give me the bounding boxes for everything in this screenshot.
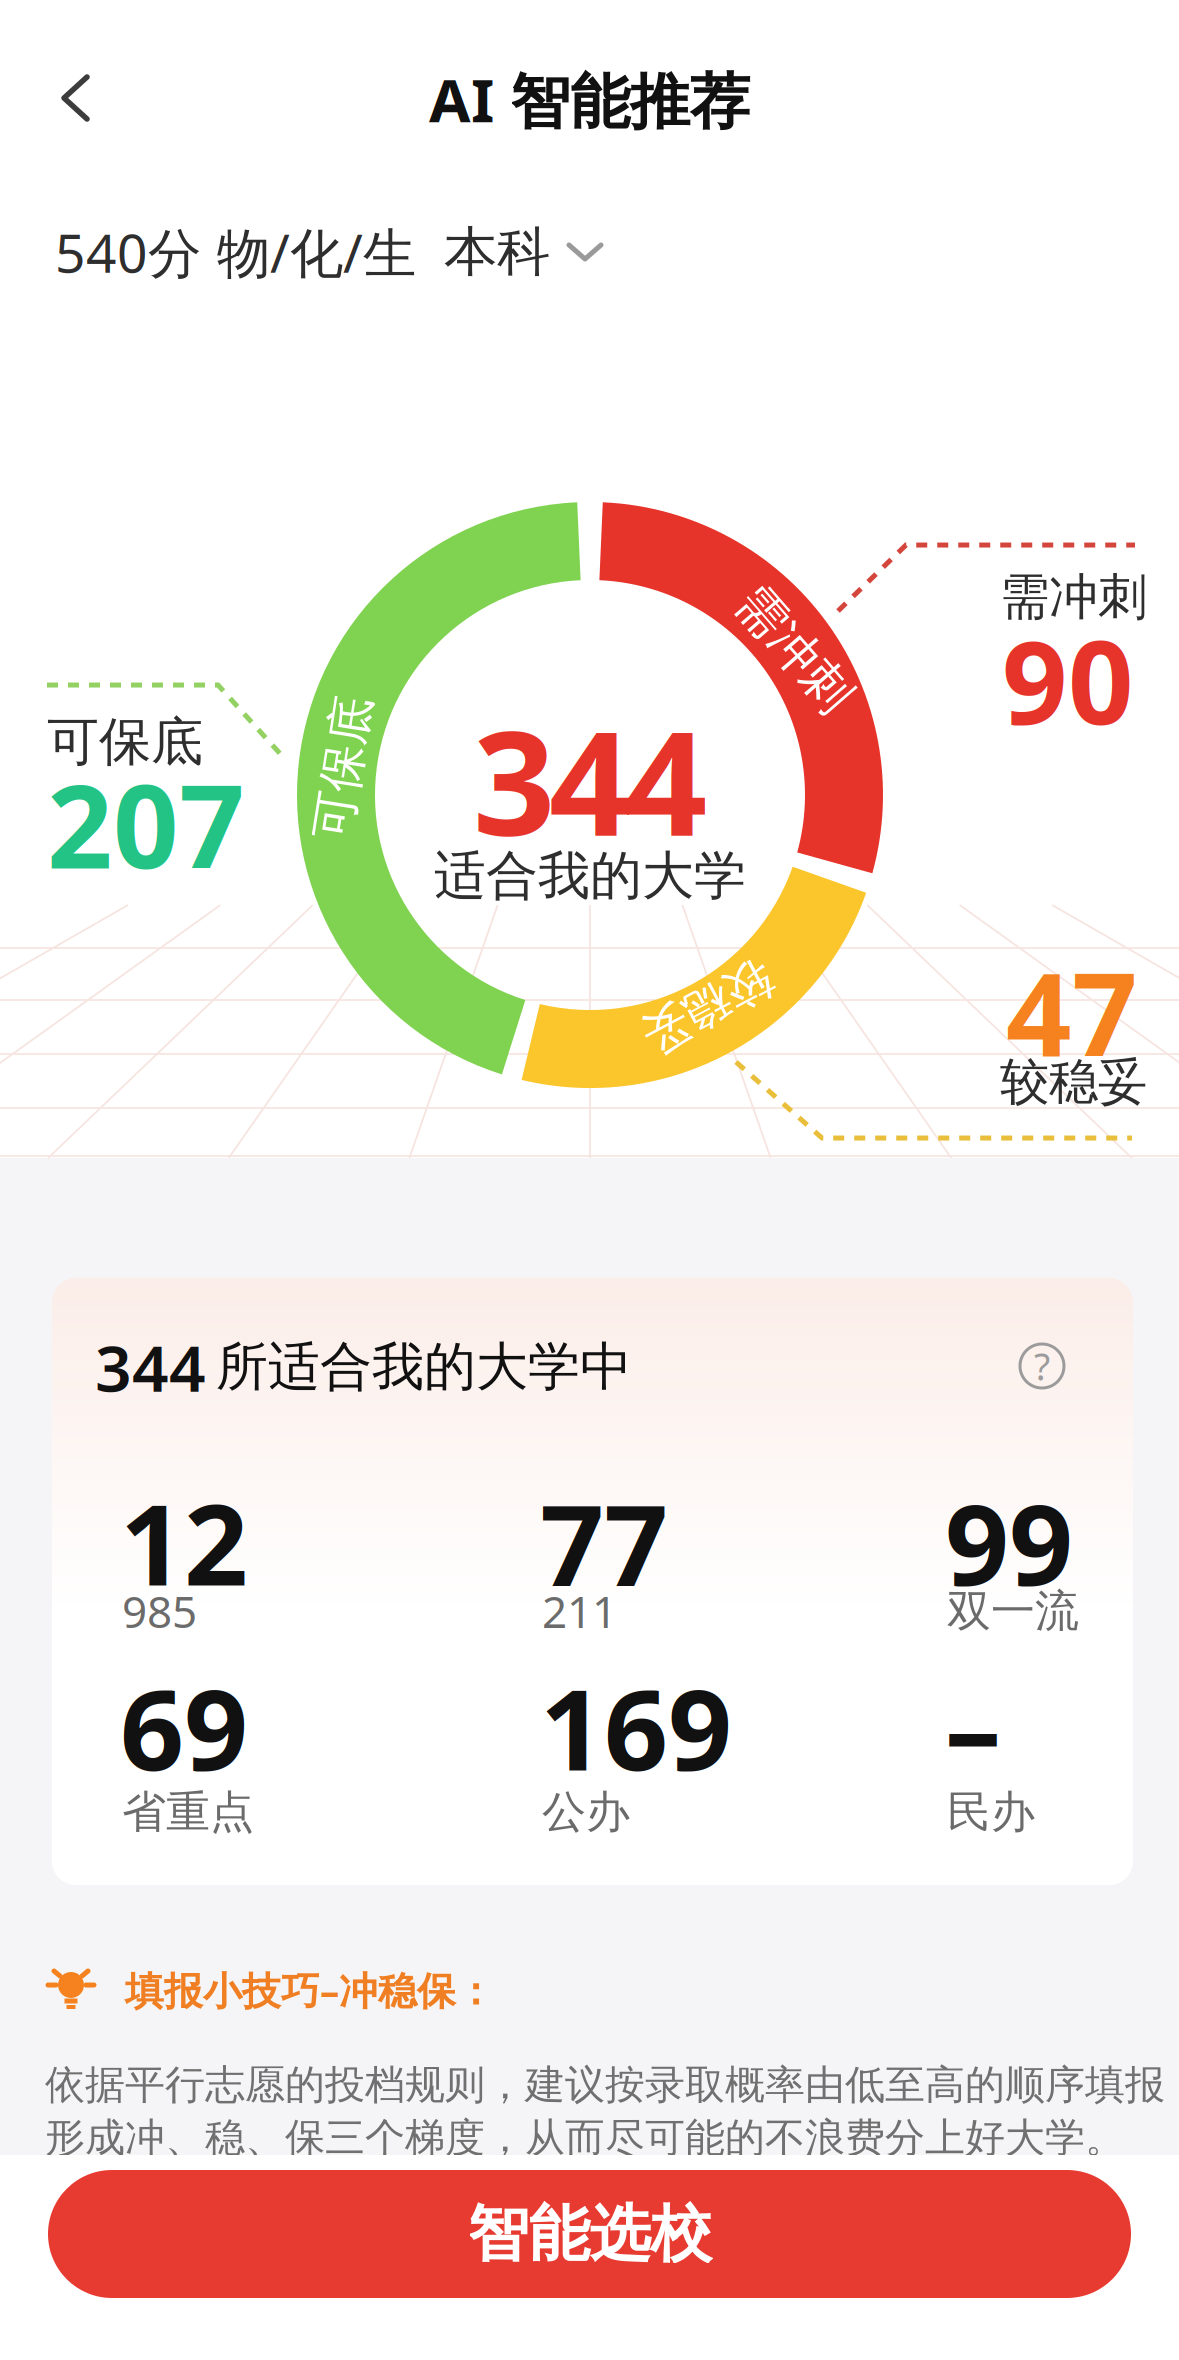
- staticText: 需冲刺: [1000, 567, 1147, 627]
- staticText: 169: [540, 1653, 732, 1801]
- staticText: 可保底: [47, 710, 203, 774]
- staticText: AI 智能推荐: [429, 59, 750, 139]
- staticText: ?: [1034, 1341, 1050, 1391]
- staticText: 344: [95, 1324, 206, 1409]
- staticText: 211: [542, 1582, 617, 1640]
- staticText: 省重点: [122, 1785, 254, 1839]
- staticText: 填报小技巧–冲稳保：: [125, 1964, 495, 2016]
- staticText: 344: [473, 684, 707, 876]
- button[interactable]: Help: [1020, 1341, 1064, 1391]
- staticText: 90: [1002, 604, 1134, 756]
- staticText: 适合我的大学: [434, 844, 746, 908]
- staticText: 智能选校: [467, 2196, 711, 2272]
- button[interactable]: Back: [57, 73, 97, 123]
- staticText: 69: [120, 1653, 248, 1801]
- staticText: 形成冲、稳、保三个梯度，从而尽可能的不浪费分上好大学。: [45, 2113, 1125, 2162]
- staticText: 77: [540, 1468, 668, 1616]
- staticText: 较稳妥: [636, 978, 777, 1036]
- staticText: 985: [122, 1582, 197, 1640]
- staticText: –: [945, 1653, 1001, 1801]
- staticText: 所适合我的大学中: [216, 1335, 632, 1399]
- staticText: 540分 物/化/生: [55, 217, 416, 287]
- staticText: 双一流: [947, 1584, 1079, 1638]
- button[interactable]: 智能选校: [48, 2170, 1131, 2298]
- staticText: 需冲刺: [720, 619, 867, 679]
- staticText: 较稳妥: [1000, 1052, 1147, 1112]
- staticText: 12: [120, 1468, 248, 1616]
- staticText: 民办: [947, 1785, 1035, 1839]
- staticText: 207: [47, 748, 245, 900]
- staticText: 可保底: [271, 738, 415, 797]
- staticText: 依据平行志愿的投档规则，建议按录取概率由低至高的顺序填报，: [45, 2060, 1179, 2109]
- staticText: 99: [945, 1468, 1073, 1616]
- staticText: 本科: [444, 219, 550, 285]
- staticText: 公办: [542, 1785, 630, 1839]
- button[interactable]: 540分 物/化/生: [0, 217, 604, 287]
- staticText: 47: [1006, 936, 1138, 1088]
